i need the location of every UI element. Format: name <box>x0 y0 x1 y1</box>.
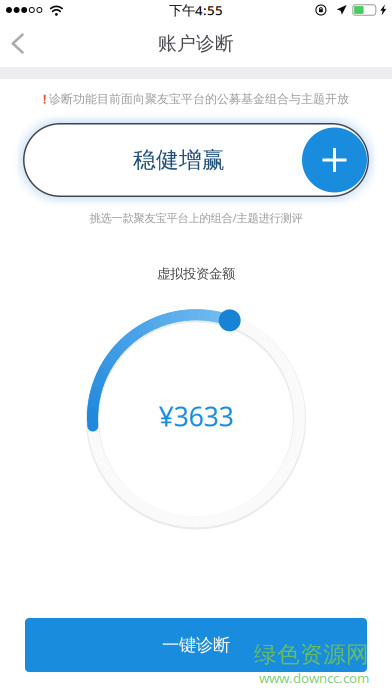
button[interactable]: Back <box>0 21 40 66</box>
staticText: 一键诊断 <box>162 634 230 656</box>
staticText: www.downcc.com <box>259 669 369 687</box>
staticText: 虚拟投资金额 <box>157 265 235 282</box>
button[interactable]: Add portfolio <box>302 127 367 192</box>
staticText: 账户诊断 <box>158 32 234 55</box>
staticText: 诊断功能目前面向聚友宝平台的公募基金组合与主题开放 <box>49 91 349 106</box>
staticText: ! <box>43 91 46 107</box>
staticText: 挑选一款聚友宝平台上的组合/主题进行测评 <box>89 210 302 225</box>
staticText: 稳健增赢 <box>133 146 225 174</box>
staticText: 绿色资源网 <box>254 640 369 669</box>
staticText: ¥3633 <box>158 398 233 434</box>
button[interactable]: 一键诊断 <box>0 618 392 672</box>
staticText: 下午4:55 <box>169 1 223 19</box>
